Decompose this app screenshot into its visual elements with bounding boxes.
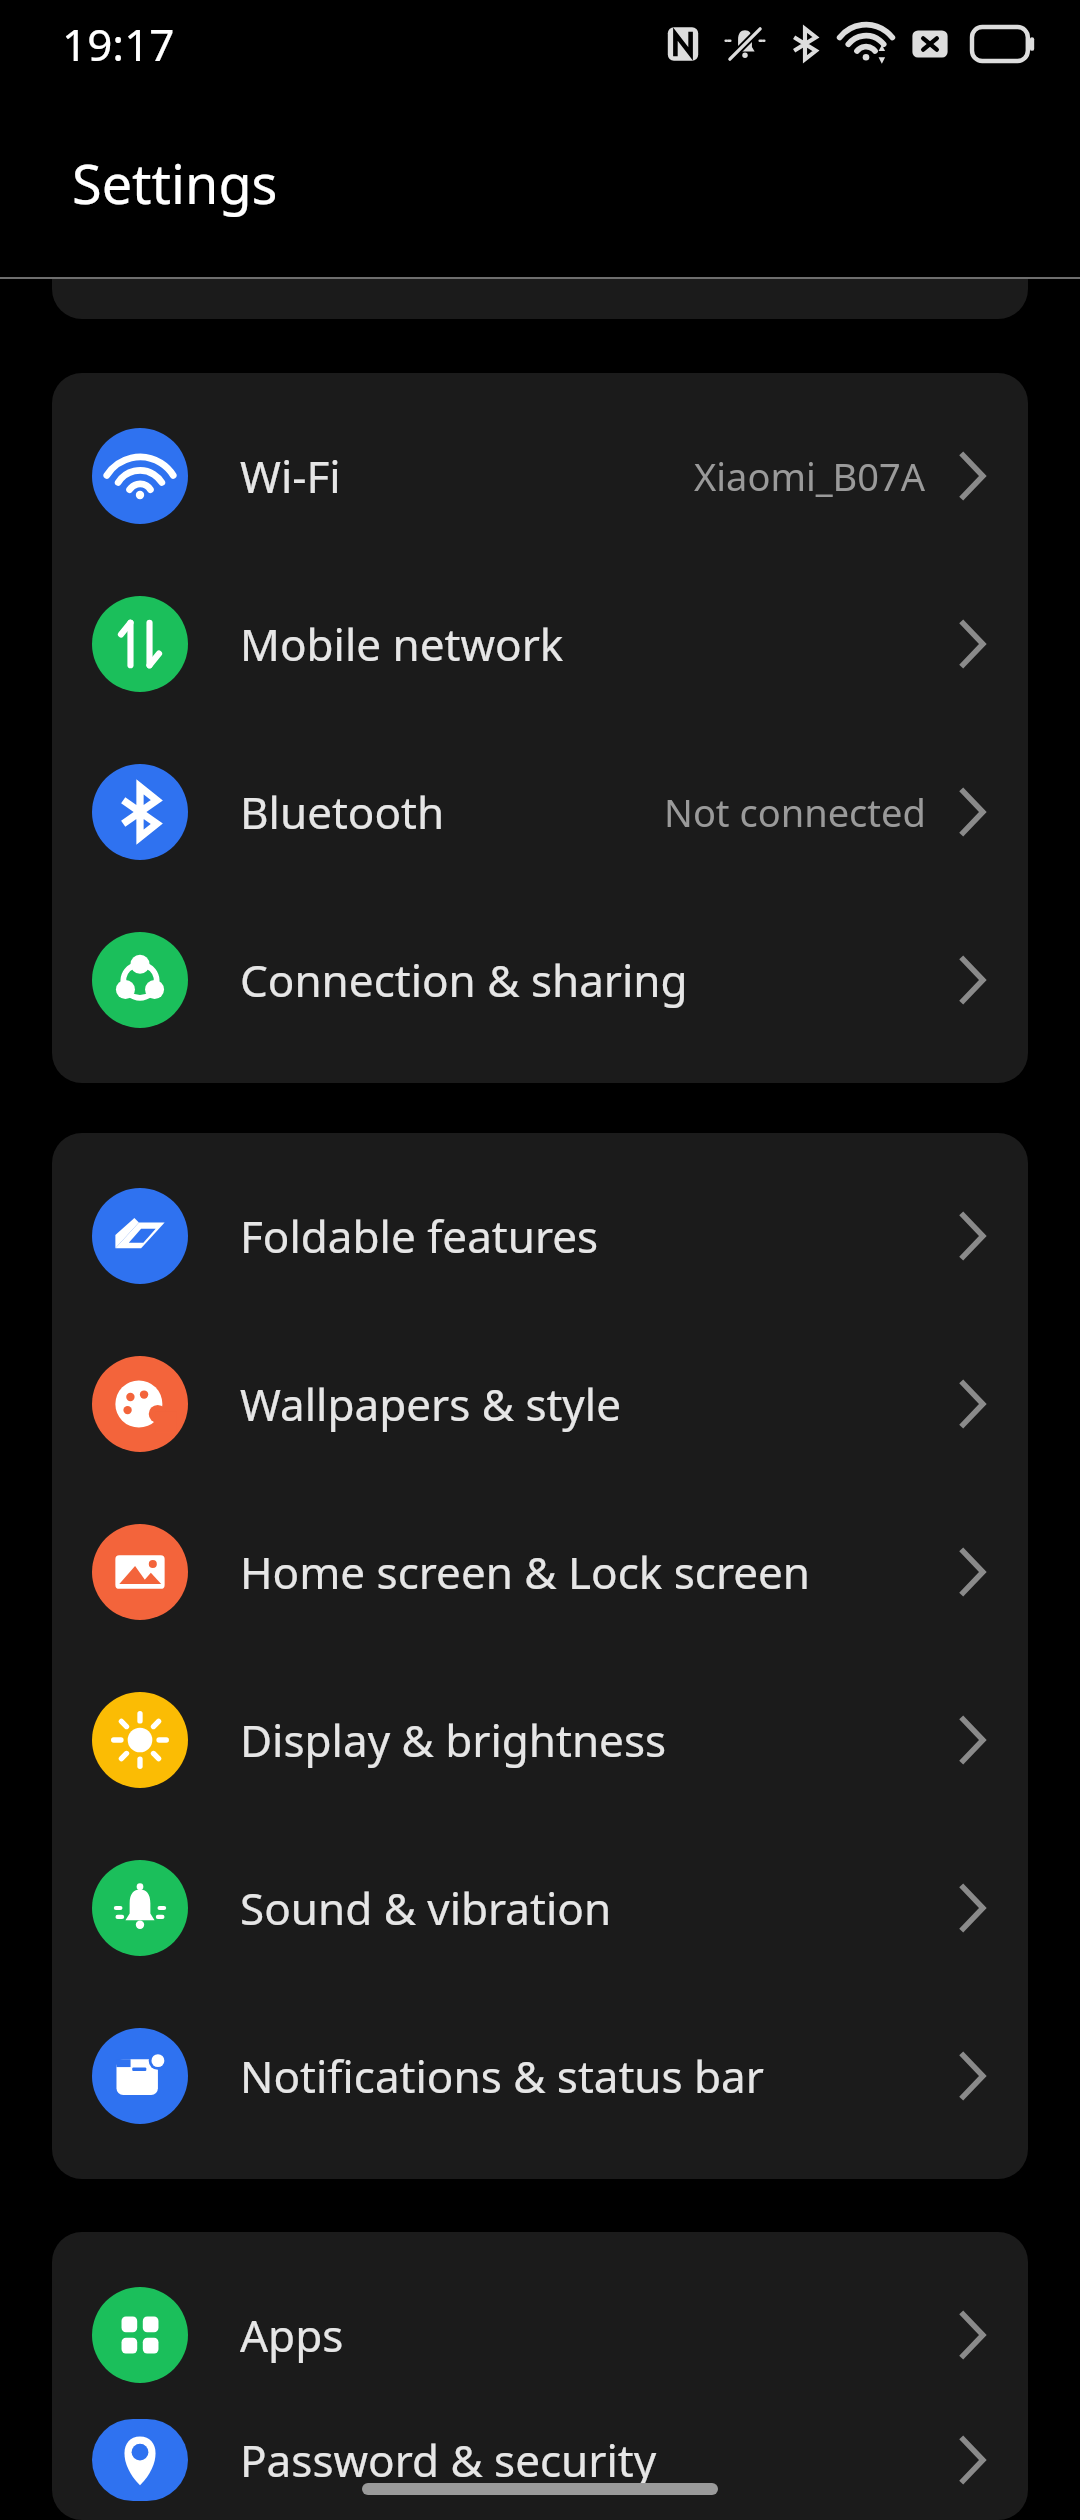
staticText: Foldable features [240,1206,599,1266]
button[interactable]: Wi-Fi [52,392,1028,560]
staticText: Wallpapers & style [240,1374,621,1434]
staticText: Password & security [240,2430,657,2490]
button[interactable]: Wallpapers & style [52,1320,1028,1488]
button[interactable]: Password & security [52,2419,1028,2501]
staticText: Sound & vibration [240,1878,612,1938]
staticText: Xiaomi_B07A [694,450,926,502]
button[interactable]: Connection & sharing [52,896,1028,1064]
staticText: Display & brightness [240,1710,667,1770]
staticText: Apps [240,2305,344,2365]
staticText: Bluetooth [240,782,445,842]
staticText: Connection & sharing [240,950,688,1010]
staticText: Not connected [664,786,926,838]
button[interactable]: Apps [52,2251,1028,2419]
staticText: Notifications & status bar [240,2046,764,2106]
button[interactable]: Display & brightness [52,1656,1028,1824]
button[interactable]: Bluetooth [52,728,1028,896]
button[interactable]: Notifications & status bar [52,1992,1028,2160]
button[interactable]: Sound & vibration [52,1824,1028,1992]
staticText: 19:17 [62,14,175,74]
staticText: Settings [72,146,278,220]
button[interactable]: Mobile network [52,560,1028,728]
staticText: Home screen & Lock screen [240,1542,811,1602]
button[interactable]: Foldable features [52,1152,1028,1320]
button[interactable]: Home screen & Lock screen [52,1488,1028,1656]
staticText: Mobile network [240,614,564,674]
staticText: Wi-Fi [240,446,341,506]
